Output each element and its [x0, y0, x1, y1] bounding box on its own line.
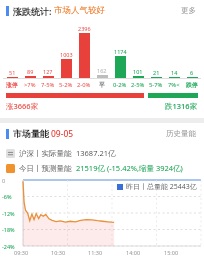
staticText: 09:30 [14, 249, 29, 256]
staticText: 14:00 [126, 249, 141, 256]
staticText: -18% [2, 226, 15, 233]
staticText: 21519亿 (-15.42%,缩量 3924亿) [76, 163, 183, 173]
staticText: 15:00 [164, 249, 179, 256]
staticText: 21 [153, 69, 160, 76]
staticText: 市场量能 [13, 128, 49, 139]
staticText: 162 [97, 67, 107, 74]
staticText: 1003 [60, 51, 73, 58]
staticText: 2-5% [131, 81, 145, 89]
staticText: >7% [24, 81, 36, 89]
staticText: 0-2% [113, 81, 127, 89]
staticText: 11:30 [88, 249, 103, 256]
staticText: 1174 [114, 48, 127, 55]
staticText: 89 [27, 68, 34, 75]
staticText: 涨停 [6, 81, 18, 88]
staticText: 10:30 [51, 249, 66, 256]
staticText: 7%< [168, 81, 180, 89]
staticText: 2-0% [77, 81, 91, 89]
staticText: -6% [2, 193, 12, 200]
staticText: 51 [9, 69, 16, 76]
staticText: 涨3666家 [6, 101, 39, 111]
staticText: 跌1316家 [165, 101, 198, 111]
button[interactable]: 今日丨预测量能 [6, 163, 198, 173]
staticText: 7-5% [41, 81, 55, 89]
staticText: 跌停 [186, 81, 198, 88]
staticText: 昨日丨总量能 25443亿 [126, 182, 197, 192]
staticText: 今日丨预测量能 [19, 164, 72, 173]
staticText: 127 [43, 68, 53, 75]
staticText: 5-7% [149, 81, 163, 89]
staticText: 涨跌统计: [13, 5, 52, 17]
staticText: -12% [2, 210, 15, 217]
staticText: -24% [2, 243, 15, 250]
button[interactable]: 更多 [179, 3, 198, 18]
button[interactable]: 昨日丨总量能 25443亿 [117, 182, 197, 192]
staticText: 101 [133, 68, 143, 75]
staticText: 沪深丨实际量能 [19, 149, 72, 158]
staticText: 5-2% [59, 81, 73, 89]
staticText: 历史量能 [166, 129, 196, 138]
staticText: 更多 [181, 6, 196, 15]
staticText: 6 [190, 69, 194, 76]
staticText: 市场人气较好 [54, 5, 105, 16]
staticText: 2396 [78, 25, 91, 32]
staticText: 平 [99, 81, 105, 88]
staticText: 0 [2, 177, 6, 184]
staticText: 13687.21亿 [76, 148, 116, 158]
staticText: 14 [171, 69, 178, 76]
button[interactable]: 历史量能 [164, 126, 198, 141]
staticText: 09-05 [51, 128, 74, 140]
button[interactable]: 沪深丨实际量能 [6, 148, 198, 158]
